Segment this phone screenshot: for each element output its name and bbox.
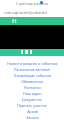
button[interactable]: Расписание занятий xyxy=(0,66,64,72)
staticText: Ближайшие события xyxy=(14,73,51,78)
staticText: Принять участие xyxy=(17,103,47,108)
staticText: Страница раздела xyxy=(0,1,64,6)
button[interactable]: Ближайшие события xyxy=(0,72,64,78)
button[interactable]: Контакты xyxy=(0,84,64,90)
staticText: Контакты xyxy=(24,85,41,90)
staticText: Записи xyxy=(26,115,39,120)
button[interactable]: Наш адрес xyxy=(0,90,64,96)
button[interactable]: Архив xyxy=(0,108,64,114)
staticText: Новости раздела о событиях xyxy=(7,61,58,66)
button[interactable]: Документы xyxy=(0,96,64,102)
staticText: Наш адрес xyxy=(23,91,42,96)
button[interactable]: Объявления xyxy=(0,78,64,84)
button[interactable]: Profile xyxy=(40,1,43,4)
staticText: сайт.рф/razdel/podrazdel xyxy=(4,10,48,15)
button[interactable]: Новости раздела о событиях xyxy=(0,60,64,66)
button[interactable]: Записи xyxy=(0,114,64,120)
staticText: Документы xyxy=(22,97,42,102)
staticText: Объявления xyxy=(21,79,43,84)
staticText: H xyxy=(12,17,17,25)
button[interactable]: Принять участие xyxy=(0,102,64,108)
staticText: Архив xyxy=(27,109,38,114)
staticText: Расписание занятий xyxy=(14,67,50,72)
